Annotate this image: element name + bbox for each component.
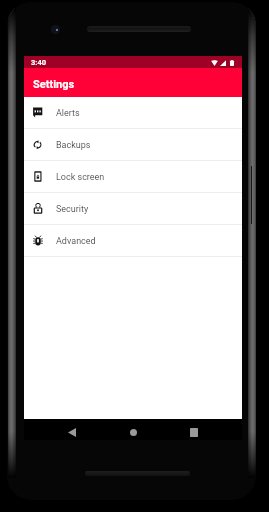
button[interactable]: Alerts bbox=[24, 97, 242, 129]
button[interactable]: Recent apps bbox=[186, 424, 202, 440]
button[interactable]: Advanced bbox=[24, 225, 242, 257]
staticText: Settings bbox=[33, 78, 75, 91]
staticText: Security bbox=[56, 204, 89, 215]
button[interactable]: Back bbox=[64, 424, 80, 440]
button[interactable]: Lock screen bbox=[24, 161, 242, 193]
staticText: Alerts bbox=[56, 108, 80, 119]
button[interactable]: Home bbox=[125, 424, 141, 440]
staticText: Lock screen bbox=[56, 172, 105, 183]
staticText: Backups bbox=[56, 140, 91, 151]
staticText: 3:40 bbox=[31, 58, 47, 67]
button[interactable]: Backups bbox=[24, 129, 242, 161]
button[interactable]: Security bbox=[24, 193, 242, 225]
staticText: Advanced bbox=[56, 236, 96, 247]
